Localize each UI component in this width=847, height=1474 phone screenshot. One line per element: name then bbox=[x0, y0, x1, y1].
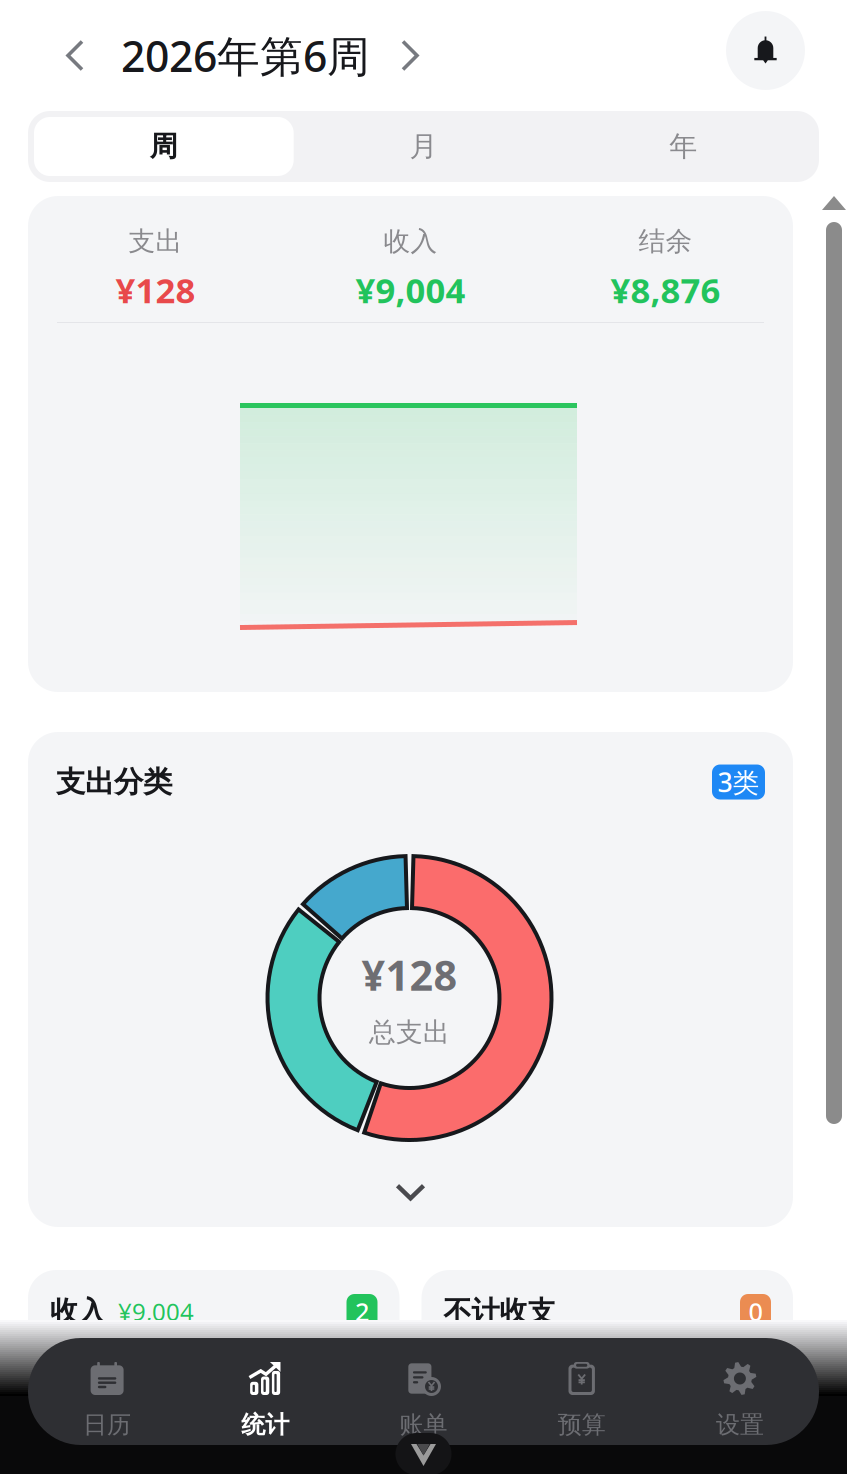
staticText: 支出分类 bbox=[56, 764, 172, 800]
staticText: 账单 bbox=[399, 1410, 447, 1439]
button[interactable]: 下一周 bbox=[381, 19, 439, 91]
staticText: ¥9,004 bbox=[355, 267, 465, 313]
staticText: 总支出 bbox=[369, 1016, 450, 1049]
staticText: 月 bbox=[409, 129, 437, 164]
staticText: 3类 bbox=[717, 764, 759, 800]
button[interactable]: 账单 bbox=[344, 1338, 503, 1445]
staticText: ¥128 bbox=[115, 267, 195, 313]
button[interactable]: 日历 bbox=[28, 1338, 186, 1445]
staticText: 支出 bbox=[128, 225, 182, 258]
staticText: 2 bbox=[355, 1295, 369, 1328]
staticText: 预算 bbox=[558, 1410, 606, 1439]
button[interactable]: 预算 bbox=[503, 1338, 661, 1445]
staticText: 不计收支 bbox=[443, 1294, 555, 1329]
staticText: 周 bbox=[150, 129, 178, 164]
staticText: ¥9,004 bbox=[106, 1296, 194, 1327]
staticText: 设置 bbox=[716, 1410, 764, 1439]
staticText: 收入 bbox=[50, 1294, 106, 1329]
button[interactable]: 年 bbox=[553, 117, 813, 176]
button[interactable]: 展开 bbox=[383, 1171, 437, 1213]
staticText: 结余 bbox=[638, 225, 692, 258]
staticText: 0 bbox=[748, 1295, 762, 1328]
button[interactable]: 上一周 bbox=[46, 19, 104, 91]
button[interactable]: 周 bbox=[34, 117, 294, 176]
button[interactable]: 月 bbox=[294, 117, 553, 176]
button[interactable]: 收入 bbox=[28, 1270, 399, 1460]
staticText: 收入 bbox=[383, 225, 437, 258]
staticText: 2026年第6周 bbox=[121, 27, 370, 84]
button[interactable]: 设置 bbox=[661, 1338, 819, 1445]
button[interactable]: 3类 bbox=[712, 764, 765, 799]
staticText: 统计 bbox=[241, 1410, 289, 1439]
button[interactable]: 通知 bbox=[726, 11, 805, 90]
staticText: 日历 bbox=[83, 1410, 131, 1439]
staticText: 年 bbox=[669, 129, 697, 164]
staticText: ¥8,876 bbox=[610, 267, 720, 313]
staticText: ¥128 bbox=[361, 947, 457, 1002]
button[interactable]: 不计收支 bbox=[421, 1270, 793, 1460]
button[interactable]: 统计 bbox=[186, 1338, 344, 1445]
